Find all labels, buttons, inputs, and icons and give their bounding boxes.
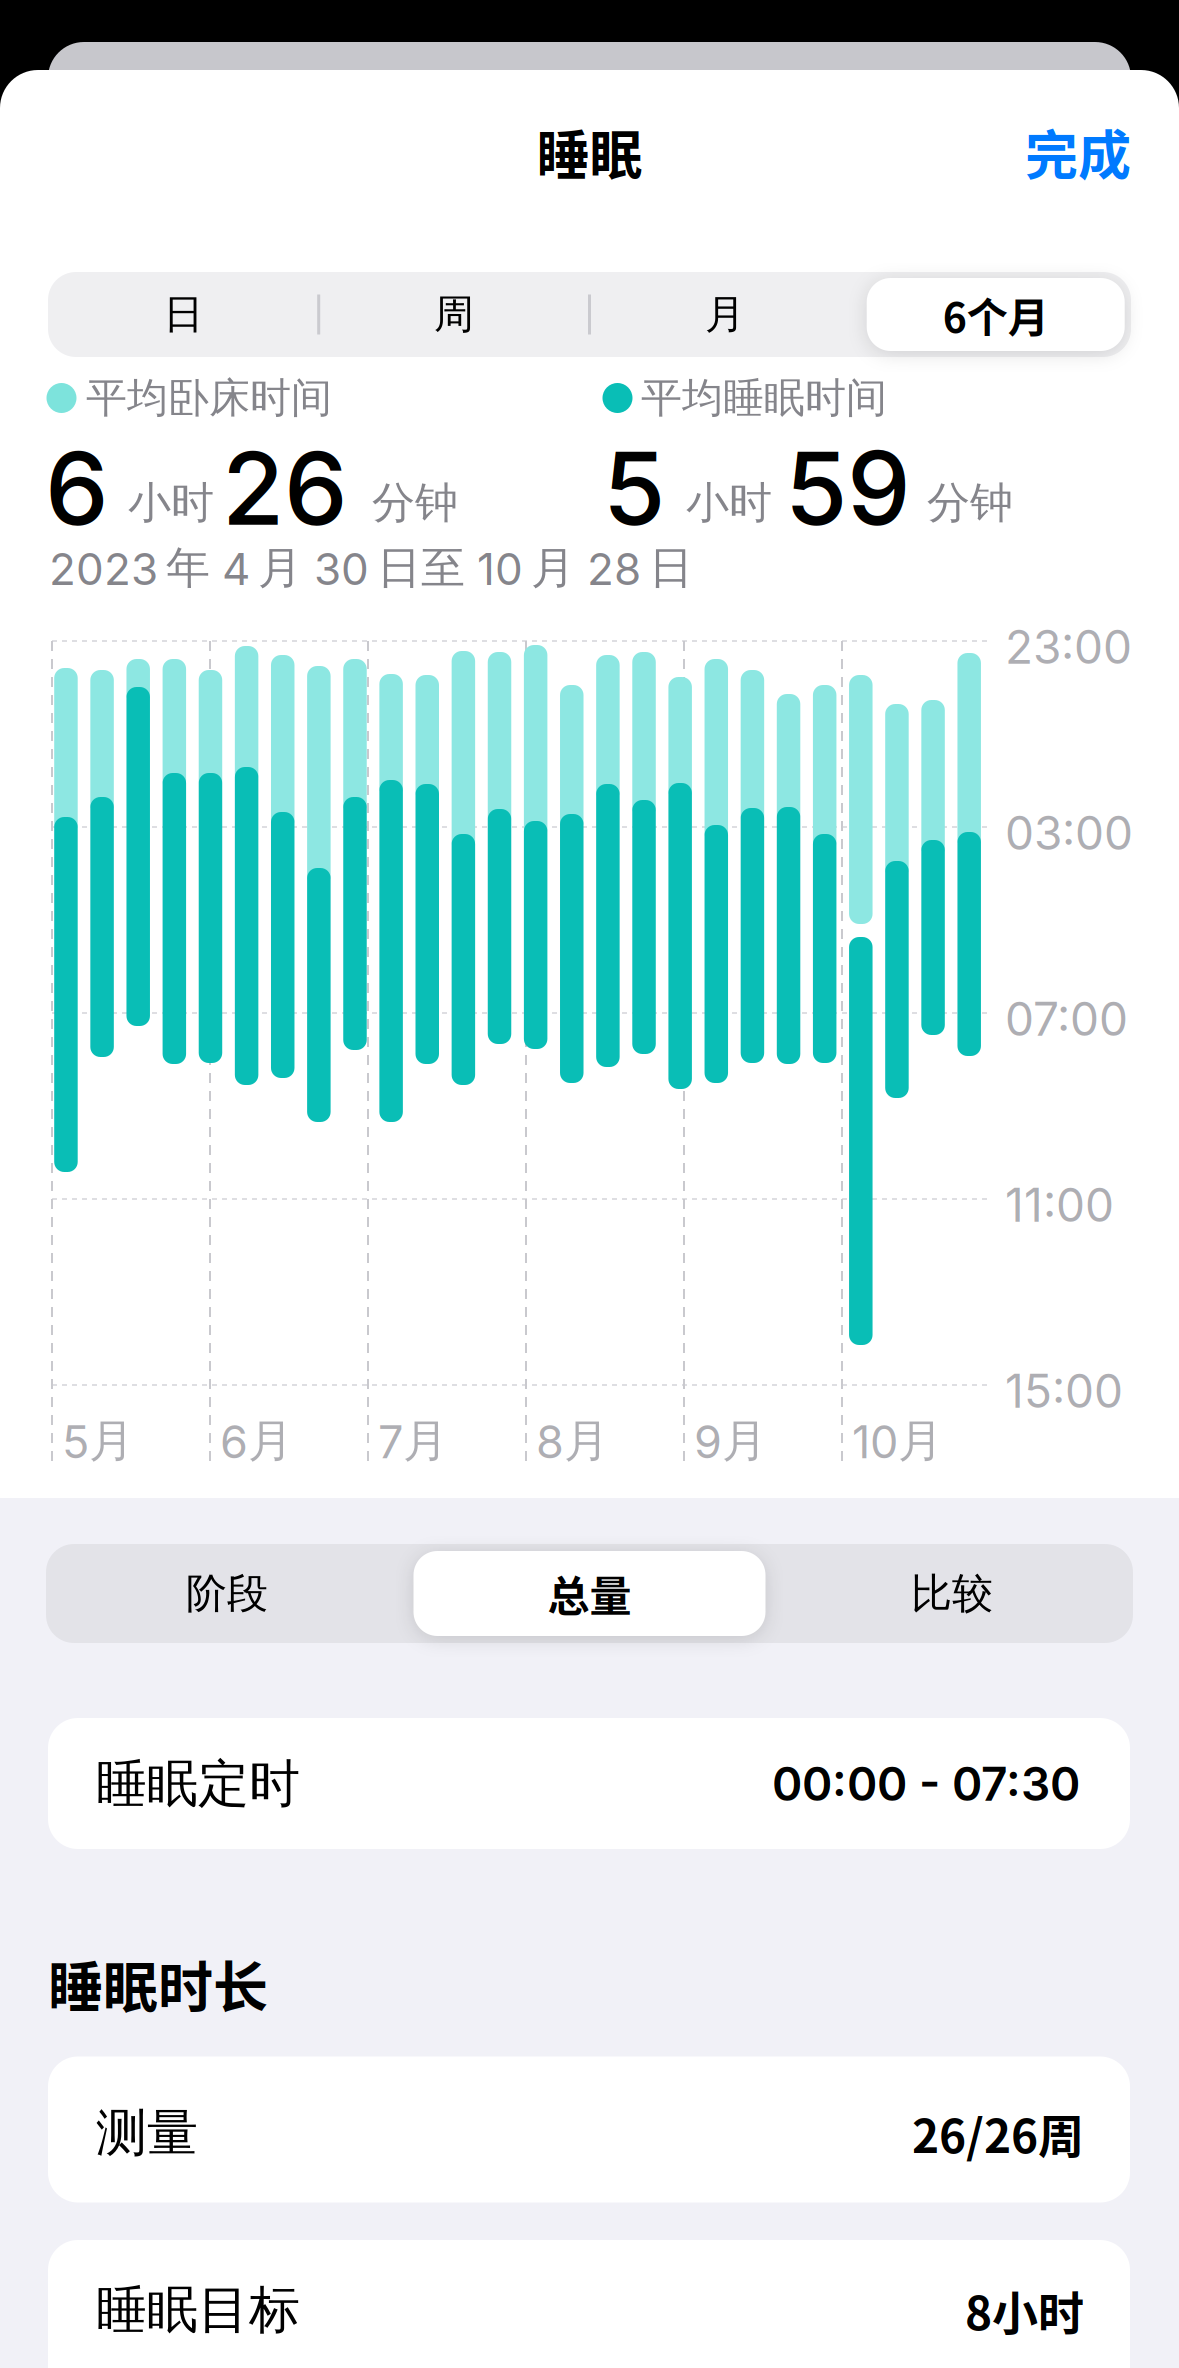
staticText: 睡眠: [536, 114, 642, 190]
staticText: 周: [434, 289, 474, 340]
staticText: 10月: [852, 1413, 943, 1469]
staticText: 小时: [686, 476, 772, 530]
staticText: 日: [163, 289, 203, 340]
button[interactable]: 周: [0, 0, 1179, 2368]
button[interactable]: 睡眠定时: [0, 0, 1179, 2368]
staticText: 26: [222, 427, 348, 549]
staticText: 平均卧床时间: [86, 372, 332, 424]
staticText: 03:00: [1005, 805, 1133, 861]
button[interactable]: 阶段: [0, 0, 1179, 2368]
staticText: 睡眠时长: [48, 1943, 268, 2023]
button[interactable]: 睡眠目标: [0, 0, 1179, 2368]
staticText: 测量: [96, 2101, 198, 2165]
staticText: 比较: [911, 1568, 993, 1619]
staticText: 完成: [1025, 114, 1131, 190]
button[interactable]: 完成: [0, 0, 1179, 2368]
staticText: 15:00: [1005, 1363, 1123, 1419]
button[interactable]: 日: [0, 0, 1179, 2368]
staticText: 5: [603, 427, 665, 549]
staticText: 6: [45, 427, 109, 549]
staticText: 59: [785, 427, 911, 549]
staticText: 分钟: [372, 476, 458, 530]
staticText: 26/26周: [912, 2100, 1084, 2166]
staticText: 7月: [378, 1413, 448, 1469]
button[interactable]: 测量: [0, 0, 1179, 2368]
button[interactable]: 总量: [0, 0, 1179, 2368]
staticText: 月: [705, 289, 745, 340]
staticText: 6月: [220, 1413, 293, 1469]
staticText: 小时: [128, 476, 214, 530]
staticText: 睡眠目标: [96, 2278, 300, 2342]
staticText: 8月: [536, 1413, 609, 1469]
staticText: 分钟: [927, 476, 1013, 530]
staticText: 07:00: [1005, 991, 1128, 1047]
staticText: 总量: [547, 1563, 631, 1624]
button[interactable]: 比较: [0, 0, 1179, 2368]
button[interactable]: 6个月: [0, 0, 1179, 2368]
staticText: 睡眠定时: [96, 1752, 300, 1816]
staticText: 23:00: [1005, 619, 1132, 675]
staticText: 11:00: [1005, 1177, 1114, 1233]
staticText: 6个月: [943, 285, 1049, 344]
button[interactable]: 月: [0, 0, 1179, 2368]
staticText: 平均睡眠时间: [641, 372, 887, 424]
staticText: 8小时: [965, 2277, 1084, 2343]
staticText: 2023 年 4 月 30 日至 10 月 28 日: [49, 540, 693, 596]
staticText: 阶段: [186, 1568, 268, 1619]
staticText: 9月: [694, 1413, 767, 1469]
staticText: 5月: [62, 1413, 134, 1469]
staticText: 00:00 - 07:30: [772, 1756, 1080, 1812]
